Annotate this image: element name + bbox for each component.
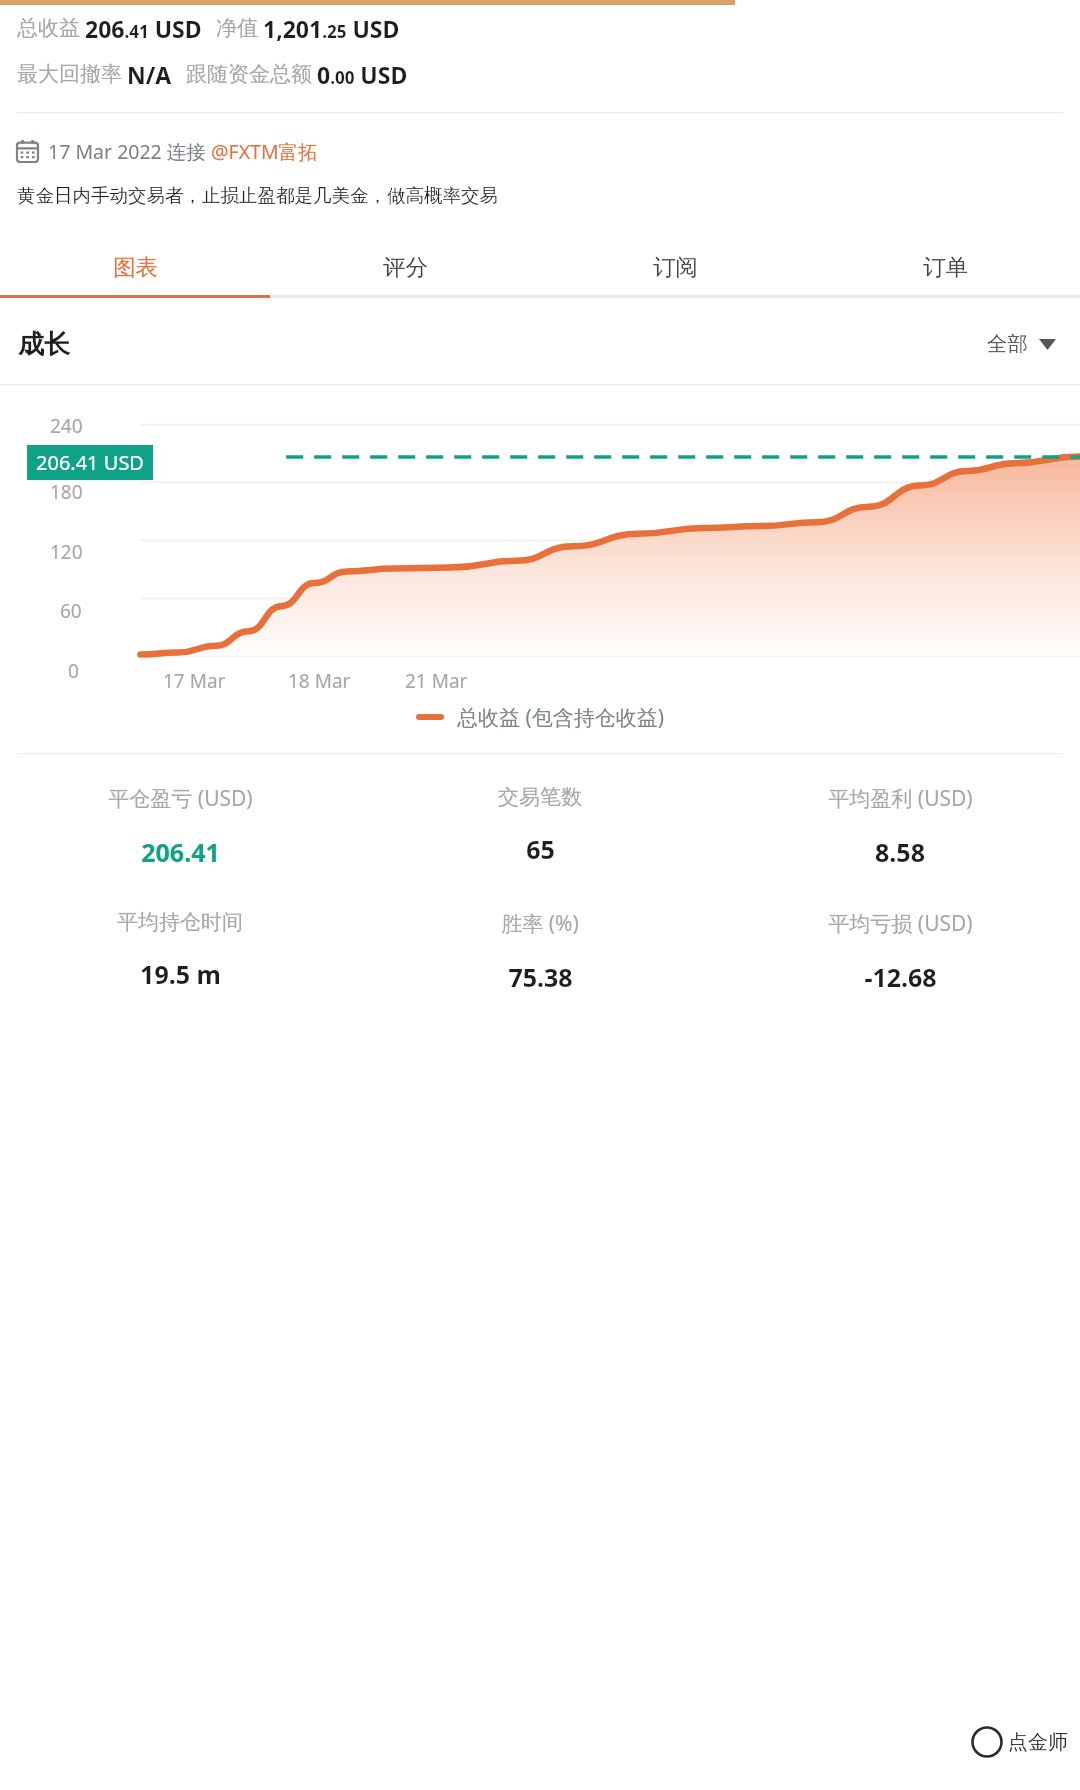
staticText: 17 Mar 2022 连接 [48, 138, 211, 165]
staticText: 订单 [923, 253, 968, 281]
staticText: 19.5 m [140, 957, 221, 991]
button[interactable]: Select period [981, 325, 1062, 363]
staticText: 跟随资金总额 [186, 61, 312, 87]
staticText: 65 [526, 832, 555, 866]
button[interactable]: 图表 [0, 239, 270, 295]
button[interactable]: 评分 [270, 239, 540, 295]
staticText: N/A [127, 59, 172, 90]
staticText: 胜率 (%) [501, 909, 579, 938]
staticText: 总收益 (包含持仓收益) [457, 703, 665, 732]
staticText: 0 [68, 658, 79, 684]
staticText: 60 [60, 598, 82, 624]
staticText: 206.41 [141, 835, 220, 869]
staticText: 240 [50, 413, 83, 439]
staticText: 120 [50, 539, 83, 565]
button[interactable]: 订阅 [540, 239, 810, 295]
button[interactable]: 17 Mar 2022 连接 [17, 136, 318, 166]
staticText: 75.38 [508, 960, 573, 994]
staticText: 平均持仓时间 [117, 909, 243, 935]
staticText: 点金师 [1008, 1730, 1068, 1755]
staticText: @FXTM富拓 [211, 138, 318, 165]
staticText: 180 [50, 479, 83, 505]
staticText: 平均亏损 (USD) [828, 909, 973, 938]
staticText: 8.58 [875, 835, 925, 869]
staticText: -12.68 [864, 960, 937, 994]
staticText: 21 Mar [405, 668, 468, 694]
staticText: 1,201.25 USD [263, 13, 400, 44]
staticText: 206.41 USD [85, 13, 202, 44]
staticText: 成长 [18, 328, 70, 361]
staticText: 平仓盈亏 (USD) [108, 784, 253, 813]
staticText: 净值 [216, 15, 258, 41]
staticText: 全部 [987, 331, 1028, 357]
staticText: 18 Mar [288, 668, 351, 694]
staticText: 平均盈利 (USD) [828, 784, 973, 813]
staticText: 总收益 [17, 15, 80, 41]
staticText: 图表 [113, 253, 158, 281]
staticText: 订阅 [653, 253, 698, 281]
staticText: 206.41 USD [36, 449, 144, 476]
staticText: 黄金日内手动交易者，止损止盈都是几美金，做高概率交易 [17, 184, 498, 207]
staticText: 17 Mar [163, 668, 226, 694]
button[interactable]: 订单 [810, 239, 1080, 295]
staticText: 评分 [383, 253, 428, 281]
staticText: 交易笔数 [498, 784, 582, 810]
staticText: 最大回撤率 [17, 61, 122, 87]
staticText: 0.00 USD [317, 59, 408, 90]
